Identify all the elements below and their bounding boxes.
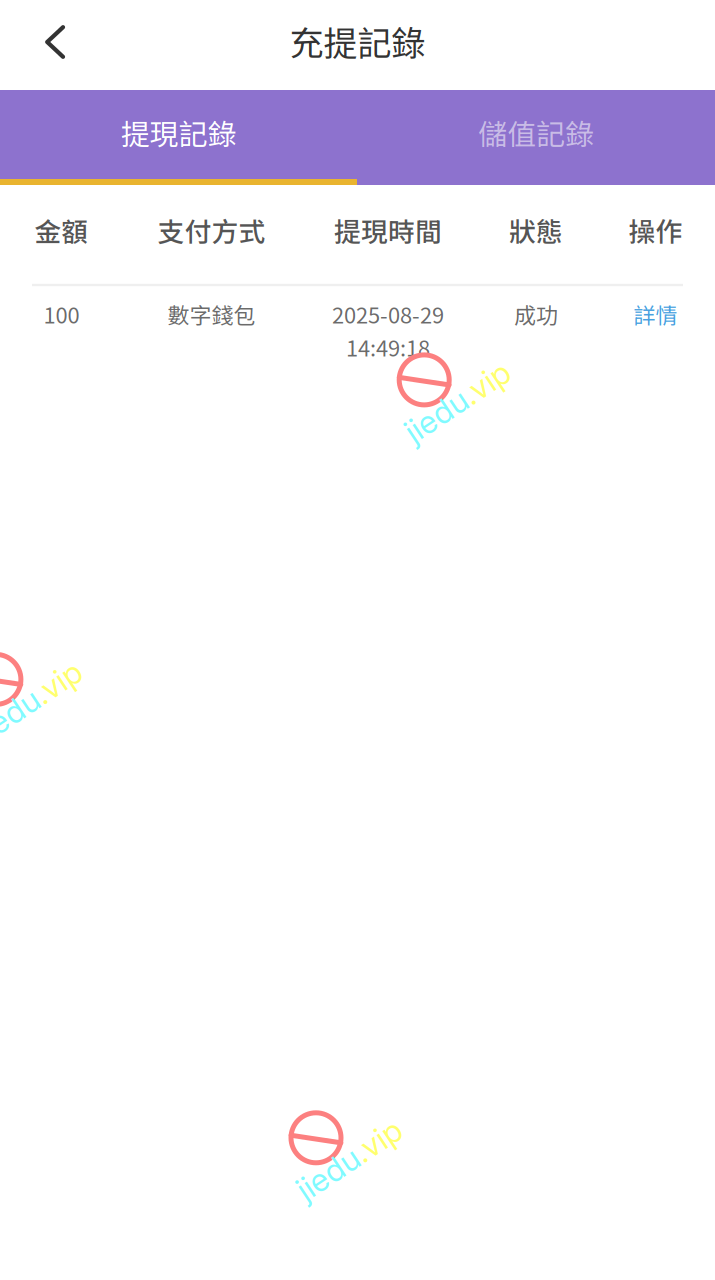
staticText: 提現時間 [334,211,442,249]
staticText: jiedu [398,382,467,421]
staticText: 100 [43,298,79,330]
button[interactable]: 儲值記錄 [357,90,715,185]
button[interactable]: Back [0,0,106,90]
staticText: 詳情 [633,298,677,330]
staticText: 充提記錄 [289,16,425,66]
staticText: 狀態 [509,211,563,249]
staticText: .vip [358,1140,409,1178]
staticText: 操作 [628,211,682,249]
staticText: 成功 [514,298,558,330]
button[interactable]: 詳情 [596,298,715,330]
staticText: 支付方式 [157,211,265,249]
staticText: .vip [38,682,89,720]
staticText: .vip [467,382,518,421]
staticText: 儲值記錄 [478,112,594,153]
button[interactable]: 提現記錄 [0,90,357,185]
staticText: 2025-08-29 [332,298,444,330]
staticText: 提現記錄 [121,112,237,153]
staticText: jiedu [289,1140,358,1178]
staticText: 金額 [34,211,88,249]
staticText: 數字錢包 [167,298,255,330]
staticText: 14:49:18 [346,331,430,363]
staticText: jiedu [0,682,38,720]
